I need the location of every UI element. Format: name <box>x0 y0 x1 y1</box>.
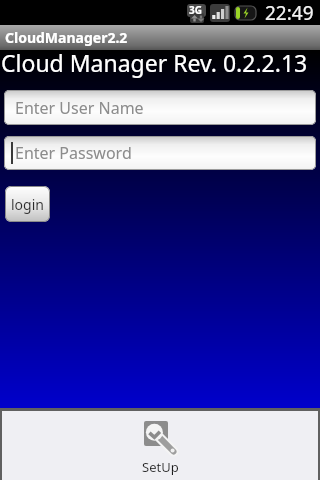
button[interactable]: Enter User Name <box>4 90 316 125</box>
button[interactable]: SetUp <box>142 421 179 476</box>
button[interactable]: Enter Password <box>4 136 316 170</box>
staticText: login <box>11 195 44 214</box>
staticText: CloudManager2.2 <box>5 28 128 47</box>
staticText: Cloud Manager Rev. 0.2.2.13 <box>1 47 308 78</box>
staticText: Enter Password <box>15 142 132 164</box>
staticText: 22:49 <box>265 0 314 25</box>
button[interactable]: login <box>5 186 50 222</box>
staticText: Enter User Name <box>15 97 144 119</box>
staticText: SetUp <box>142 458 179 476</box>
staticText: 3G <box>189 3 202 17</box>
